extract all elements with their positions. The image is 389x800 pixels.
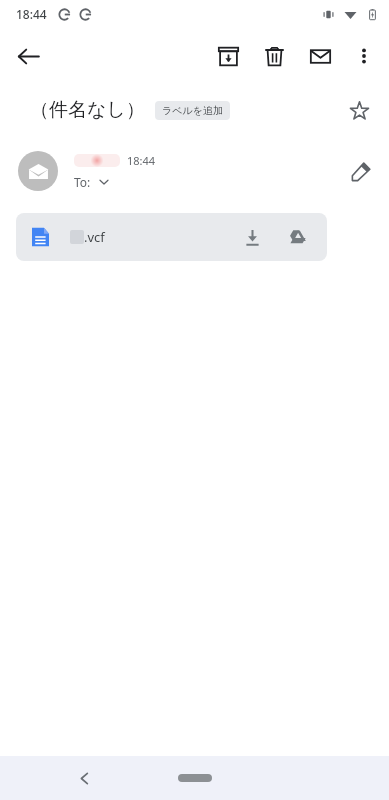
staticText: （件名なし） [30,98,145,122]
button[interactable]: 18:44 [0,149,389,193]
button[interactable]: Mark as unread [297,33,343,79]
button[interactable]: More options [343,35,385,77]
button[interactable]: Star [337,88,381,132]
button[interactable]: Home [178,774,212,782]
staticText: .vcf [84,228,105,246]
button[interactable]: Edit [339,149,383,193]
staticText: 18:44 [16,6,47,22]
button[interactable]: Save to Drive [279,220,313,254]
button[interactable]: Archive [205,33,251,79]
button[interactable]: Delete [251,33,297,79]
staticText: 18:44 [127,153,156,168]
button[interactable]: Back [6,34,50,78]
button[interactable]: .vcf [16,213,327,261]
button[interactable]: Download [235,220,269,254]
staticText: To: [74,174,91,190]
button[interactable]: ラベルを追加 [155,101,230,120]
staticText: ラベルを追加 [162,104,223,117]
button[interactable]: Back [66,760,102,796]
